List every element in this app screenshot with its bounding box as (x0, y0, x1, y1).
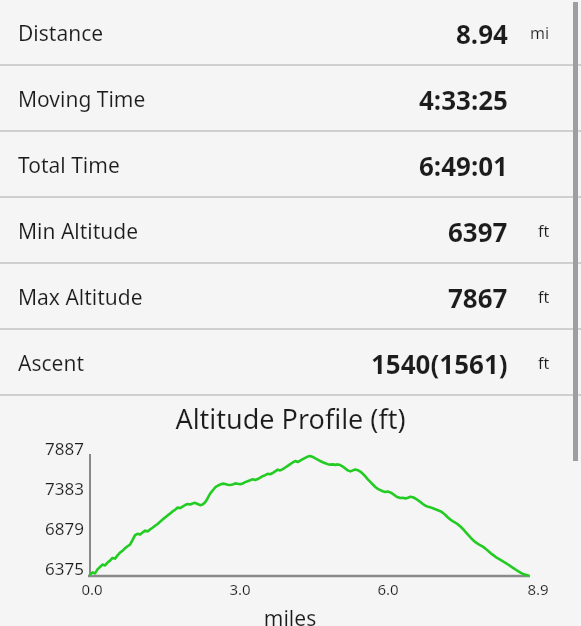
button[interactable]: Min Altitude (0, 198, 581, 264)
staticText: ft (538, 286, 550, 308)
button[interactable]: Moving Time (0, 66, 581, 132)
button[interactable]: Max Altitude (0, 264, 581, 330)
staticText: 8.94 (456, 16, 508, 51)
staticText: 6:49:01 (419, 148, 508, 183)
staticText: Distance (18, 19, 104, 48)
staticText: Min Altitude (18, 217, 139, 246)
staticText: 4:33:25 (419, 82, 508, 117)
button[interactable]: Distance (0, 0, 581, 66)
staticText: Total Time (18, 151, 120, 180)
button[interactable]: Ascent (0, 330, 581, 396)
staticText: ft (538, 220, 550, 242)
staticText: 7383 (0, 477, 84, 500)
staticText: 7887 (0, 437, 84, 460)
staticText: 6.0 (358, 579, 418, 599)
staticText: Ascent (18, 349, 84, 378)
staticText: 6879 (0, 517, 84, 540)
staticText: 0.0 (62, 579, 122, 599)
staticText: Max Altitude (18, 283, 143, 312)
staticText: 6375 (0, 557, 84, 580)
staticText: 1540(1561) (371, 346, 508, 381)
staticText: Moving Time (18, 85, 146, 114)
staticText: miles (245, 604, 335, 626)
staticText: 3.0 (210, 579, 270, 599)
staticText: mi (530, 22, 550, 44)
staticText: 7867 (448, 280, 508, 315)
staticText: 6397 (448, 214, 508, 249)
staticText: ft (538, 352, 550, 374)
staticText: 8.9 (508, 579, 568, 599)
button[interactable]: Total Time (0, 132, 581, 198)
staticText: Altitude Profile (ft) (0, 400, 581, 437)
